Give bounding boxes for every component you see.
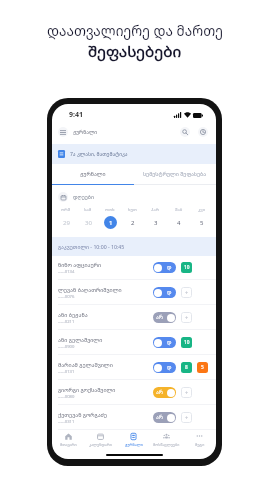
staticText: მარიამ გელაშვილი	[58, 361, 113, 368]
staticText: +	[185, 389, 189, 396]
button[interactable]: Menu	[58, 127, 68, 137]
button[interactable]: 4	[167, 215, 190, 230]
staticText: -----0131	[58, 369, 75, 375]
button[interactable]: 1	[99, 215, 121, 230]
button[interactable]: 3	[144, 215, 167, 230]
staticText: 8	[185, 364, 188, 371]
button[interactable]: ლევან ბაღათრიშვილი	[52, 280, 216, 305]
staticText: -----0311	[58, 419, 75, 425]
button[interactable]: Attendance toggle	[153, 287, 176, 298]
staticText: გაკვეთილი - 10:00 - 10:45	[58, 243, 125, 250]
staticText: ანი გელაშვილი	[58, 336, 103, 343]
staticText: ანი ბეჟანა	[58, 311, 88, 318]
staticText: ხუთ	[128, 207, 137, 213]
button[interactable]: 30	[77, 215, 99, 230]
button[interactable]: ქეთევან გორგაძე	[52, 405, 216, 430]
staticText: სემესტრული შეფასება	[143, 170, 207, 177]
button[interactable]: 5	[197, 362, 208, 373]
staticText: დ	[167, 364, 172, 371]
staticText: ნინო აფციაური	[58, 261, 102, 268]
button[interactable]: Attendance toggle	[153, 312, 176, 323]
staticText: 3	[154, 219, 158, 227]
staticText: ჟურნალი	[73, 129, 98, 136]
staticText: სამ	[84, 207, 92, 213]
button[interactable]: Add grade	[181, 387, 192, 398]
staticText: კვი	[198, 207, 206, 213]
staticText: 10	[184, 264, 190, 271]
staticText: შეფასებები	[88, 41, 182, 62]
staticText: 10	[184, 339, 190, 346]
button[interactable]: Search	[180, 127, 190, 137]
staticText: 4	[177, 219, 181, 227]
button[interactable]: Attendance toggle	[153, 412, 176, 423]
staticText: არ	[156, 389, 163, 396]
staticText: დაათვალიერე და მართე	[47, 21, 223, 39]
button[interactable]: Notifications	[198, 127, 208, 137]
button[interactable]: Attendance toggle	[153, 362, 176, 373]
staticText: -----0080	[58, 394, 75, 400]
staticText: -----0076	[58, 294, 75, 300]
button[interactable]: მთავარი	[52, 429, 84, 451]
staticText: მთავარი	[60, 442, 77, 447]
button[interactable]: Attendance toggle	[153, 387, 176, 398]
staticText: დ	[167, 339, 172, 346]
staticText: ჟურნალი	[80, 170, 106, 177]
staticText: 7ა კლასი, მათემატიკა	[70, 151, 128, 158]
staticText: კალენდარი	[89, 442, 112, 447]
button[interactable]: გიორგი გოქსაშვილი	[52, 380, 216, 405]
button[interactable]: 2	[121, 215, 144, 230]
button[interactable]: 10	[181, 262, 192, 273]
staticText: 2	[131, 219, 135, 227]
staticText: +	[185, 314, 189, 321]
staticText: დ	[167, 264, 172, 271]
button[interactable]: ჟურნალი	[117, 429, 150, 451]
button[interactable]: Attendance toggle	[153, 262, 176, 273]
staticText: არ	[156, 414, 163, 421]
button[interactable]: 8	[181, 362, 192, 373]
button[interactable]: მეტი	[183, 429, 216, 451]
staticText: ორშ	[61, 207, 71, 213]
staticText: დ	[167, 289, 172, 296]
button[interactable]: Add grade	[181, 312, 192, 323]
button[interactable]: მარიამ გელაშვილი	[52, 355, 216, 380]
button[interactable]: სემესტრული შეფასება	[134, 163, 216, 184]
staticText: მოსწავლეები	[153, 442, 180, 447]
button[interactable]: ანი ბეჟანა	[52, 305, 216, 330]
staticText: დღეები	[73, 193, 94, 200]
staticText: 30	[85, 219, 92, 227]
button[interactable]: ნინო აფციაური	[52, 255, 216, 280]
staticText: -----0211	[58, 319, 75, 325]
button[interactable]: Attendance toggle	[153, 337, 176, 348]
staticText: ჟურნალი	[125, 442, 143, 447]
staticText: +	[185, 289, 189, 296]
staticText: +	[185, 414, 189, 421]
staticText: 5	[200, 219, 204, 227]
button[interactable]: მოსწავლეები	[150, 429, 183, 451]
staticText: პარ	[151, 207, 160, 213]
button[interactable]: ანი გელაშვილი	[52, 330, 216, 355]
staticText: 5	[201, 364, 204, 371]
staticText: 9:41	[69, 110, 83, 120]
button[interactable]: 10	[181, 337, 192, 348]
staticText: ოთხ	[105, 207, 115, 213]
staticText: ლევან ბაღათრიშვილი	[58, 286, 122, 293]
staticText: არ	[156, 314, 163, 321]
staticText: -----0900	[58, 344, 75, 350]
button[interactable]: 29	[55, 215, 77, 230]
button[interactable]: ჟურნალი	[52, 163, 134, 184]
staticText: 1	[109, 219, 113, 227]
button[interactable]: 5	[190, 215, 213, 230]
staticText: ქეთევან გორგაძე	[58, 411, 107, 418]
staticText: მეტი	[195, 442, 205, 447]
button[interactable]: Add grade	[181, 287, 192, 298]
staticText: შაბ	[175, 207, 183, 213]
staticText: გიორგი გოქსაშვილი	[58, 386, 116, 393]
button[interactable]: Menu	[58, 127, 98, 137]
button[interactable]: კალენდარი	[84, 429, 117, 451]
staticText: 29	[63, 219, 70, 227]
staticText: -----0134	[58, 269, 75, 275]
button[interactable]: Add grade	[181, 412, 192, 423]
